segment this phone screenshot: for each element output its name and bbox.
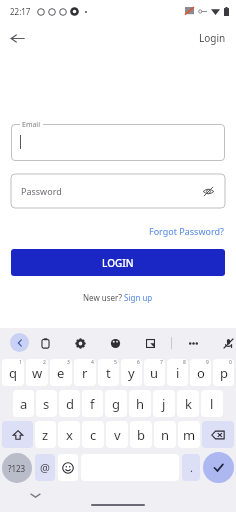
staticText: c <box>90 426 97 444</box>
staticText: 6 <box>137 359 140 366</box>
button[interactable]: r <box>74 359 96 386</box>
button[interactable]: Emoji <box>58 454 78 481</box>
button[interactable]: LOGIN <box>11 249 225 276</box>
button[interactable]: Theme <box>107 335 123 351</box>
button[interactable]: y <box>121 359 142 386</box>
staticText: 9 <box>206 359 209 366</box>
button[interactable]: Login <box>195 27 230 49</box>
button[interactable]: v <box>106 421 128 448</box>
button[interactable]: m <box>178 421 200 448</box>
button[interactable]: Sign up <box>124 292 153 303</box>
button[interactable]: ?123 <box>2 453 32 483</box>
button[interactable]: Clipboard <box>37 335 53 351</box>
staticText: m <box>183 426 196 444</box>
button[interactable]: Forgot Password? <box>146 222 227 240</box>
staticText: 4 <box>91 359 94 366</box>
staticText: LOGIN <box>102 256 134 270</box>
button[interactable]: e <box>50 359 72 386</box>
staticText: f <box>90 395 95 413</box>
staticText: Login <box>199 31 226 45</box>
staticText: x <box>66 426 73 444</box>
button[interactable]: More options <box>185 335 201 351</box>
staticText: 7 <box>160 359 163 366</box>
staticText: Password <box>21 185 62 197</box>
button[interactable]: x <box>58 421 80 448</box>
staticText: k <box>185 395 192 413</box>
button[interactable]: Show password <box>199 182 217 200</box>
staticText: 2 <box>43 359 46 366</box>
staticText: b <box>137 426 145 444</box>
button[interactable]: j <box>153 390 175 417</box>
button[interactable]: d <box>59 390 80 417</box>
staticText: 22:17 <box>10 6 31 17</box>
staticText: o <box>197 364 205 382</box>
button[interactable]: Previous <box>10 333 29 352</box>
staticText: v <box>114 426 121 444</box>
button[interactable]: Settings <box>72 335 88 351</box>
staticText: 5 <box>114 359 117 366</box>
staticText: z <box>42 426 49 444</box>
button[interactable]: a <box>13 390 34 417</box>
staticText: w <box>32 364 43 382</box>
staticText: @ <box>40 460 50 475</box>
staticText: n <box>161 426 170 444</box>
button[interactable]: q <box>2 359 24 386</box>
button[interactable]: Stickers <box>142 335 158 351</box>
staticText: . <box>190 460 193 475</box>
staticText: Sign up <box>124 292 153 303</box>
button[interactable]: Mute microphone <box>220 335 236 351</box>
button[interactable]: h <box>129 390 151 417</box>
button[interactable]: t <box>98 359 119 386</box>
staticText: e <box>57 364 65 382</box>
button[interactable]: Backspace <box>202 421 234 448</box>
staticText: i <box>176 364 180 382</box>
staticText: g <box>112 395 120 413</box>
staticText: Forgot Password? <box>149 225 224 237</box>
staticText: d <box>66 395 74 413</box>
button[interactable]: p <box>213 359 234 386</box>
button[interactable]: s <box>36 390 57 417</box>
staticText: y <box>128 364 135 382</box>
staticText: ?123 <box>8 463 26 474</box>
button[interactable]: Shift <box>2 421 33 448</box>
button[interactable]: w <box>26 359 48 386</box>
staticText: r <box>82 364 88 382</box>
button[interactable]: g <box>105 390 127 417</box>
button[interactable]: z <box>35 421 56 448</box>
button[interactable]: l <box>201 390 223 417</box>
button[interactable]: . <box>182 454 200 481</box>
staticText: 3 <box>67 359 70 366</box>
button[interactable]: @ <box>35 454 55 481</box>
button[interactable]: o <box>190 359 211 386</box>
button[interactable]: f <box>82 390 103 417</box>
staticText: 0 <box>229 359 232 366</box>
staticText: s <box>43 395 50 413</box>
button[interactable]: Enter <box>203 452 234 483</box>
staticText: a <box>20 395 28 413</box>
staticText: j <box>162 395 166 413</box>
button[interactable]: Password <box>11 174 225 208</box>
staticText: p <box>220 364 228 382</box>
staticText: q <box>9 364 17 382</box>
button[interactable]: k <box>177 390 199 417</box>
button[interactable]: n <box>154 421 176 448</box>
button[interactable]: Back <box>3 24 31 52</box>
staticText: 8 <box>183 359 186 366</box>
staticText: t <box>106 364 111 382</box>
button[interactable]: b <box>130 421 152 448</box>
staticText: Email <box>22 120 40 130</box>
staticText: l <box>210 395 214 413</box>
staticText: h <box>136 395 145 413</box>
button[interactable]: Hide keyboard <box>26 486 44 504</box>
staticText: New user? <box>83 292 124 303</box>
button[interactable]: c <box>82 421 104 448</box>
staticText: 1 <box>19 359 22 366</box>
button[interactable]: u <box>144 359 165 386</box>
staticText: u <box>150 364 159 382</box>
button[interactable]: i <box>167 359 188 386</box>
